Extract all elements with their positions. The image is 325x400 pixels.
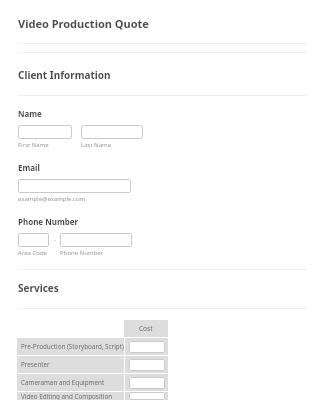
staticText: Pre-Production (Storyboard, Script) bbox=[21, 342, 124, 351]
staticText: example@example.com bbox=[18, 195, 86, 203]
staticText: Cost bbox=[139, 324, 153, 333]
button[interactable]: Cost 1 bbox=[129, 341, 165, 353]
staticText: Phone Number bbox=[18, 216, 79, 227]
staticText: Email bbox=[18, 162, 40, 173]
staticText: Area Code bbox=[18, 249, 47, 257]
staticText: Services bbox=[18, 281, 59, 295]
button[interactable]: Cost 4 bbox=[129, 392, 165, 400]
staticText: Presenter bbox=[21, 360, 50, 369]
button[interactable]: Pre-Production (Storyboard, Script) bbox=[17, 338, 168, 355]
staticText: Name bbox=[18, 108, 42, 119]
staticText: Cameraman and Equipment Usage bbox=[21, 378, 124, 387]
staticText: Last Name bbox=[81, 141, 112, 149]
button[interactable]: First Name bbox=[18, 125, 72, 139]
staticText: Phone Number bbox=[60, 249, 104, 257]
button[interactable]: Video Editing and Composition bbox=[17, 392, 168, 400]
button[interactable]: Presenter bbox=[17, 356, 168, 373]
button[interactable]: Cameraman and Equipment Usage bbox=[17, 374, 168, 391]
button[interactable]: Cost 2 bbox=[129, 359, 165, 371]
button[interactable]: Cost 3 bbox=[129, 377, 165, 389]
button[interactable]: Phone Number bbox=[60, 233, 132, 247]
staticText: Video Production Quote bbox=[18, 16, 149, 31]
staticText: - bbox=[54, 236, 56, 244]
button[interactable]: Email bbox=[18, 179, 131, 193]
button[interactable]: Area Code bbox=[18, 233, 49, 247]
staticText: Video Editing and Composition bbox=[21, 392, 113, 400]
staticText: First Name bbox=[18, 141, 49, 149]
staticText: Client Information bbox=[18, 68, 111, 82]
button[interactable]: Last Name bbox=[81, 125, 143, 139]
